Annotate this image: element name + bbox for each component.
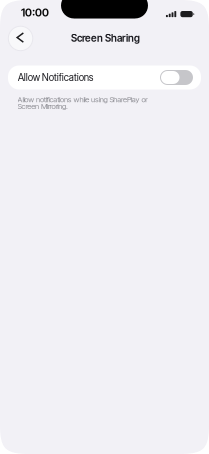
- button[interactable]: Back: [8, 26, 33, 51]
- staticText: Allow notifications while using SharePla…: [18, 95, 147, 111]
- button[interactable]: Allow Notifications: [160, 70, 193, 85]
- staticText: Allow Notifications: [18, 71, 94, 83]
- staticText: 10:00: [21, 6, 49, 19]
- staticText: Screen Sharing: [71, 32, 140, 44]
